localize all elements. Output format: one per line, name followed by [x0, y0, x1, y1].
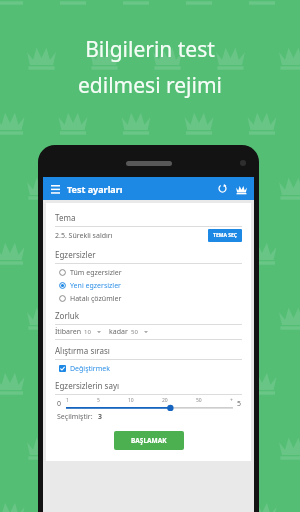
staticText: Hatalı çözümler — [70, 294, 122, 304]
staticText: 1 — [66, 397, 69, 404]
staticText: 10 — [84, 328, 91, 336]
button[interactable]: BAŞLAMAK — [114, 431, 184, 450]
staticText: Test ayarları — [67, 183, 123, 195]
staticText: 5 — [97, 397, 100, 404]
staticText: 50 — [131, 328, 138, 336]
staticText: Egzersizler — [55, 249, 96, 260]
button[interactable]: Tüm egzersizler — [55, 266, 242, 279]
staticText: BAŞLAMAK — [131, 436, 167, 445]
staticText: Egzersizlerin sayı — [55, 380, 120, 391]
staticText: Alıştırma sırası — [55, 345, 110, 356]
staticText: 5 — [237, 399, 242, 409]
staticText: Tema — [55, 212, 76, 223]
staticText: 50 — [196, 397, 202, 404]
button[interactable]: Hatalı çözümler — [55, 292, 242, 305]
button[interactable]: Yeni egzersizler — [55, 279, 242, 292]
button[interactable]: Değiştirmek — [55, 362, 110, 375]
staticText: İtibaren — [55, 327, 81, 337]
button[interactable]: TEMA SEÇ — [208, 229, 242, 242]
staticText: Tüm egzersizler — [70, 268, 122, 278]
staticText: Yeni egzersizler — [70, 281, 121, 291]
staticText: edilmesi rejimi — [78, 71, 222, 100]
staticText: TEMA SEÇ — [213, 232, 237, 239]
button[interactable]: Refresh — [215, 181, 230, 196]
staticText: Zorluk — [55, 310, 79, 321]
staticText: 2.5. Sürekli saldırı — [55, 231, 113, 241]
staticText: + — [230, 397, 233, 404]
button[interactable]: Menu — [48, 182, 62, 196]
staticText: 20 — [162, 397, 168, 404]
staticText: Seçilmiştir: — [57, 412, 93, 422]
button[interactable] — [66, 397, 233, 411]
staticText: 3 — [98, 412, 103, 422]
staticText: 0 — [57, 399, 62, 409]
staticText: kadar — [109, 327, 128, 337]
button[interactable]: Premium — [233, 181, 249, 197]
staticText: Değiştirmek — [70, 364, 110, 374]
staticText: Bilgilerin test — [85, 35, 215, 64]
staticText: 10 — [128, 397, 134, 404]
